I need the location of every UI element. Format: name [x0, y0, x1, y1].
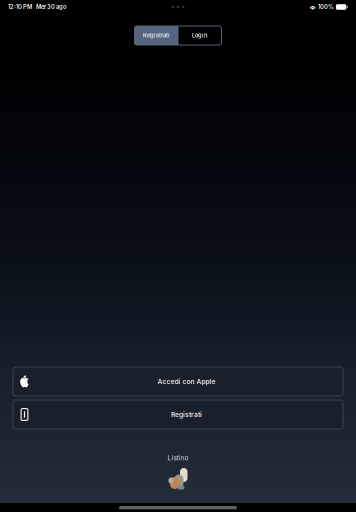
staticText: 100% — [318, 3, 334, 10]
staticText: Login — [192, 32, 208, 39]
staticText: Listino — [167, 454, 188, 462]
button[interactable]: Registrati — [13, 400, 343, 429]
staticText: Accedi con Apple — [157, 377, 215, 386]
staticText: Mer 30 ago — [36, 3, 66, 10]
staticText: 12:10 PM — [8, 3, 32, 10]
button[interactable]: Accedi con Apple — [13, 367, 343, 396]
staticText: Registrati — [171, 410, 202, 419]
button[interactable]: Registrati — [134, 26, 178, 45]
staticText: Registrati — [143, 32, 170, 39]
button[interactable]: Login — [178, 26, 221, 45]
